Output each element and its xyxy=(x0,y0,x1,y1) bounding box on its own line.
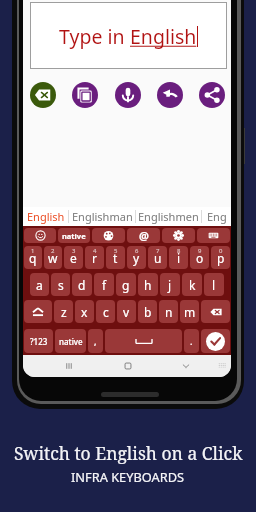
staticText: 5 xyxy=(114,247,118,255)
staticText: d xyxy=(78,277,86,293)
button[interactable]: p xyxy=(211,246,230,269)
button[interactable]: Type in xyxy=(30,2,227,69)
staticText: . xyxy=(190,335,193,347)
button[interactable]: , xyxy=(88,329,103,353)
staticText: 3 xyxy=(72,247,76,255)
staticText: @ xyxy=(139,228,149,243)
button[interactable]: k xyxy=(182,273,202,296)
staticText: INFRA KEYBOARDS xyxy=(71,468,185,485)
staticText: Type in xyxy=(59,23,130,50)
button[interactable]: ?123 xyxy=(24,329,53,353)
button[interactable]: Hide keyboard xyxy=(211,355,231,377)
button[interactable]: English xyxy=(23,207,68,226)
button[interactable]: r xyxy=(85,246,104,269)
staticText: z xyxy=(61,304,67,320)
button[interactable]: Shift xyxy=(24,300,52,323)
staticText: p xyxy=(217,250,225,266)
staticText: y xyxy=(133,250,140,266)
staticText: k xyxy=(189,277,196,293)
button[interactable]: Space xyxy=(105,329,182,353)
staticText: l xyxy=(212,277,216,293)
button[interactable]: Home xyxy=(117,355,139,377)
button[interactable]: Voice input xyxy=(115,82,141,108)
button[interactable]: x xyxy=(75,300,94,323)
staticText: 8 xyxy=(177,247,181,255)
staticText: x xyxy=(81,304,88,320)
button[interactable]: q xyxy=(24,246,42,269)
staticText: v xyxy=(123,304,130,320)
staticText: 0 xyxy=(219,247,223,255)
button[interactable]: s xyxy=(51,273,70,296)
button[interactable]: . xyxy=(184,329,199,353)
staticText: , xyxy=(94,335,97,347)
staticText: Switch to English on a Click xyxy=(14,441,243,465)
button[interactable]: z xyxy=(54,300,73,323)
button[interactable]: @ xyxy=(127,228,160,243)
button[interactable]: u xyxy=(148,246,167,269)
button[interactable]: native xyxy=(55,329,86,353)
button[interactable]: b xyxy=(138,300,157,323)
staticText: English xyxy=(130,23,197,50)
button[interactable]: Backspace xyxy=(201,300,230,323)
button[interactable]: i xyxy=(169,246,188,269)
staticText: t xyxy=(113,250,118,266)
button[interactable]: Keyboard tool xyxy=(24,228,56,243)
button[interactable]: g xyxy=(116,273,136,296)
staticText: native xyxy=(62,231,86,241)
button[interactable]: y xyxy=(127,246,146,269)
button[interactable]: Recent apps xyxy=(58,355,80,377)
button[interactable]: c xyxy=(96,300,115,323)
staticText: English xyxy=(27,209,65,224)
staticText: native xyxy=(59,336,83,347)
button[interactable]: Enter xyxy=(201,329,230,353)
staticText: w xyxy=(48,250,58,266)
button[interactable]: m xyxy=(180,300,199,323)
button[interactable]: Keyboard tool xyxy=(162,228,195,243)
staticText: g xyxy=(122,277,130,293)
button[interactable]: l xyxy=(204,273,224,296)
staticText: r xyxy=(92,250,97,266)
button[interactable]: o xyxy=(190,246,209,269)
staticText: 2 xyxy=(51,247,55,255)
staticText: i xyxy=(177,250,181,266)
button[interactable]: f xyxy=(94,273,114,296)
staticText: 6 xyxy=(135,247,139,255)
staticText: Eng xyxy=(207,209,227,224)
staticText: s xyxy=(58,277,64,293)
button[interactable]: Englishmen xyxy=(136,207,201,226)
button[interactable]: Englishman xyxy=(69,207,135,226)
staticText: a xyxy=(36,277,43,293)
button[interactable]: h xyxy=(138,273,158,296)
staticText: j xyxy=(168,277,172,293)
button[interactable]: Keyboard tool xyxy=(92,228,125,243)
button[interactable]: e xyxy=(64,246,83,269)
staticText: 1 xyxy=(31,247,35,255)
staticText: m xyxy=(184,304,196,320)
button[interactable]: native xyxy=(58,228,90,243)
staticText: Englishmen xyxy=(138,209,199,224)
button[interactable]: Keyboard tool xyxy=(197,228,230,243)
button[interactable]: Undo xyxy=(157,82,183,108)
staticText: b xyxy=(144,304,152,320)
button[interactable]: a xyxy=(30,273,49,296)
button[interactable]: Clear text xyxy=(30,82,56,108)
button[interactable]: d xyxy=(72,273,92,296)
staticText: o xyxy=(196,250,204,266)
button[interactable]: v xyxy=(117,300,136,323)
staticText: n xyxy=(165,304,173,320)
staticText: e xyxy=(70,250,77,266)
staticText: c xyxy=(103,304,109,320)
staticText: f xyxy=(102,277,107,293)
staticText: q xyxy=(29,250,37,266)
button[interactable]: w xyxy=(44,246,62,269)
staticText: 9 xyxy=(198,247,202,255)
button[interactable]: Eng xyxy=(202,207,231,226)
button[interactable]: j xyxy=(160,273,180,296)
button[interactable]: Share xyxy=(199,82,225,108)
button[interactable]: Copy xyxy=(72,82,98,108)
staticText: Englishman xyxy=(72,209,133,224)
button[interactable]: t xyxy=(106,246,125,269)
staticText: 7 xyxy=(156,247,160,255)
button[interactable]: Back xyxy=(175,355,197,377)
button[interactable]: n xyxy=(159,300,178,323)
